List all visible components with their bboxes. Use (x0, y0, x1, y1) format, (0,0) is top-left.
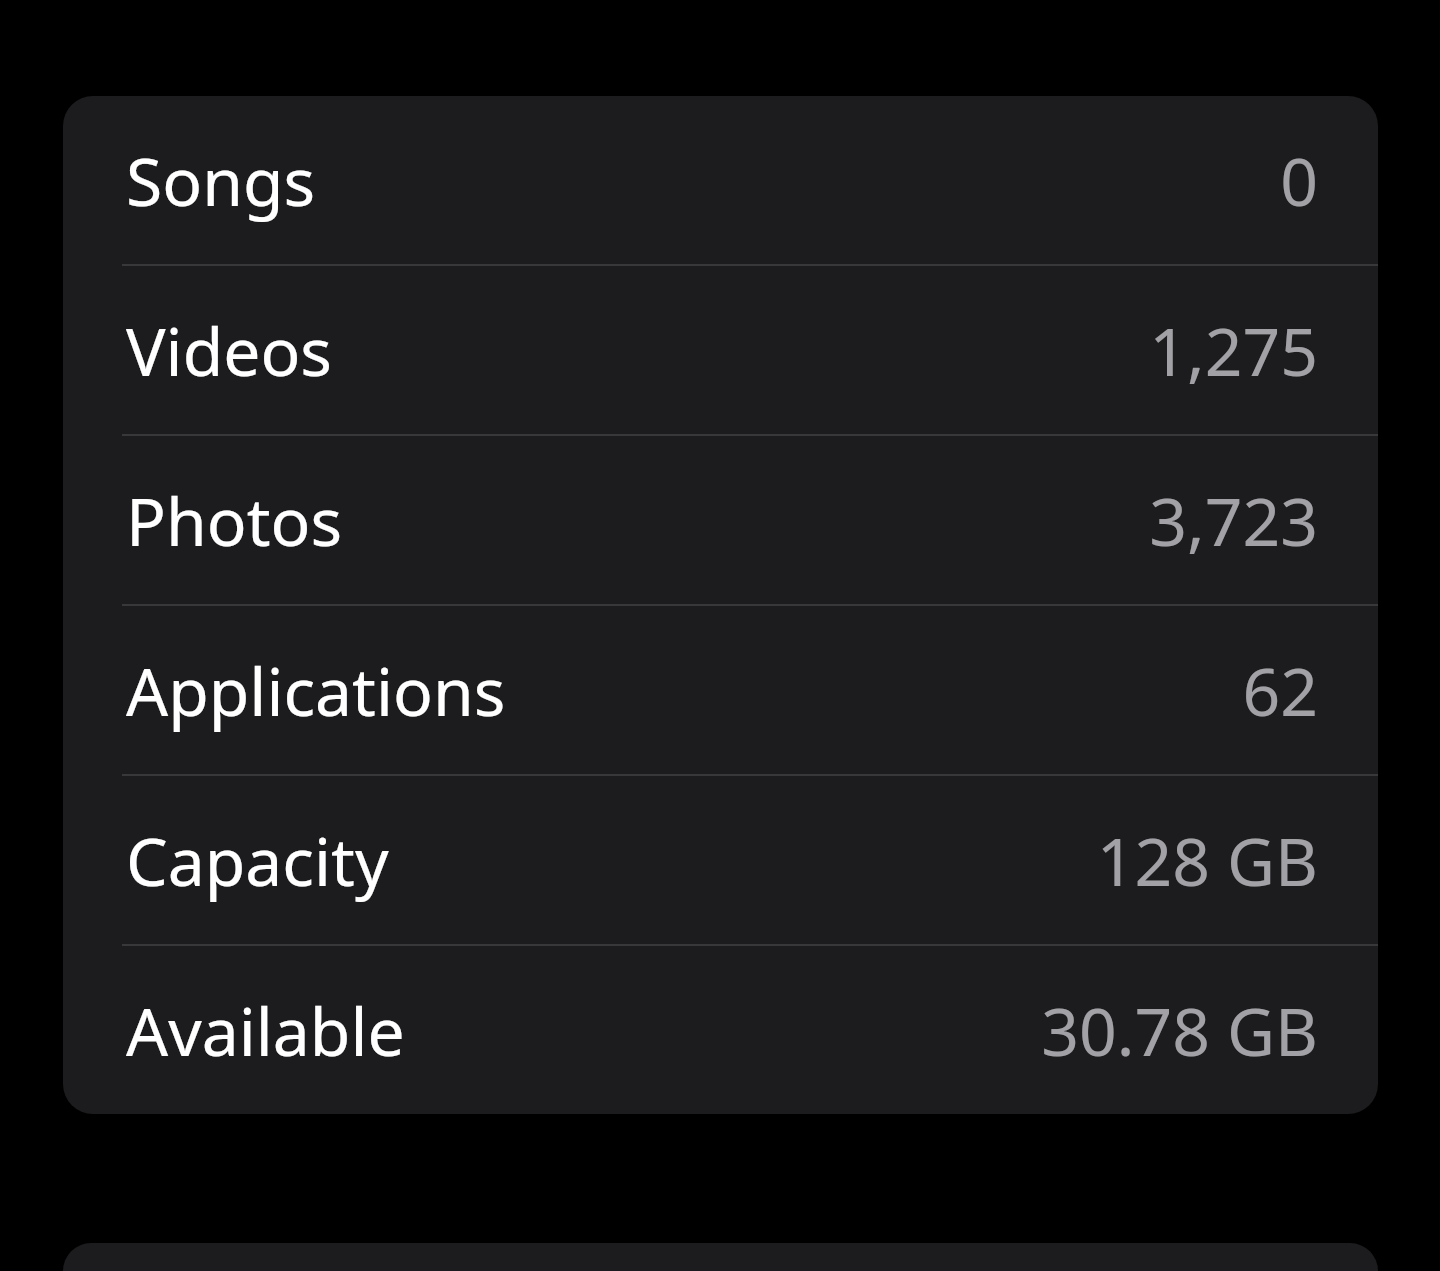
staticText: 30.78 GB (1041, 985, 1318, 1075)
button[interactable]: Capacity (63, 776, 1378, 944)
staticText: Songs (126, 135, 316, 225)
staticText: Available (126, 985, 405, 1075)
staticText: 62 (1242, 645, 1318, 735)
staticText: Photos (126, 475, 343, 565)
button[interactable]: Applications (63, 606, 1378, 774)
staticText: 0 (1280, 135, 1318, 225)
staticText: Capacity (126, 815, 389, 905)
staticText: 128 GB (1096, 815, 1318, 905)
staticText: 3,723 (1149, 475, 1318, 565)
button[interactable]: Songs (63, 96, 1378, 264)
staticText: Applications (126, 645, 506, 735)
staticText: 1,275 (1149, 305, 1318, 395)
button[interactable]: Available (63, 946, 1378, 1114)
staticText: Videos (126, 305, 332, 395)
button[interactable]: Videos (63, 266, 1378, 434)
button[interactable]: Photos (63, 436, 1378, 604)
